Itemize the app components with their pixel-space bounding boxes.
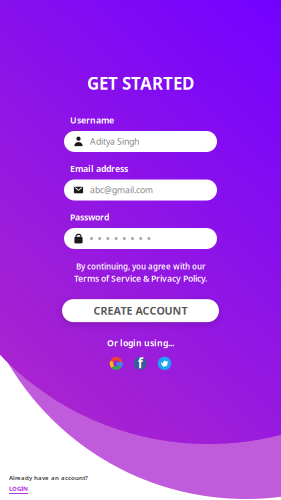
staticText: By continuing, you agree with our — [76, 261, 205, 272]
staticText: Email address — [70, 163, 128, 174]
button[interactable] — [64, 228, 217, 249]
staticText: abc@gmail.com — [90, 184, 153, 196]
staticText: Aditya Singh — [90, 136, 139, 147]
staticText: CREATE ACCOUNT — [93, 304, 187, 318]
button[interactable]: Sign in with Facebook — [134, 357, 147, 370]
button[interactable]: Sign in with Twitter — [158, 357, 171, 370]
button[interactable]: abc@gmail.com — [64, 179, 217, 200]
staticText: Or login using... — [107, 337, 174, 349]
staticText: Already have an account? — [9, 474, 88, 482]
staticText: GET STARTED — [87, 72, 194, 94]
button[interactable]: CREATE ACCOUNT — [62, 299, 219, 322]
button[interactable]: Aditya Singh — [64, 131, 217, 152]
staticText: Password — [70, 211, 109, 223]
button[interactable]: Sign in with Google — [110, 357, 123, 370]
staticText: f — [138, 354, 143, 372]
staticText: Terms of Service & Privacy Policy. — [74, 273, 207, 284]
staticText: LOGIN — [9, 484, 28, 492]
button[interactable]: LOGIN — [9, 484, 28, 494]
staticText: Username — [70, 114, 114, 126]
